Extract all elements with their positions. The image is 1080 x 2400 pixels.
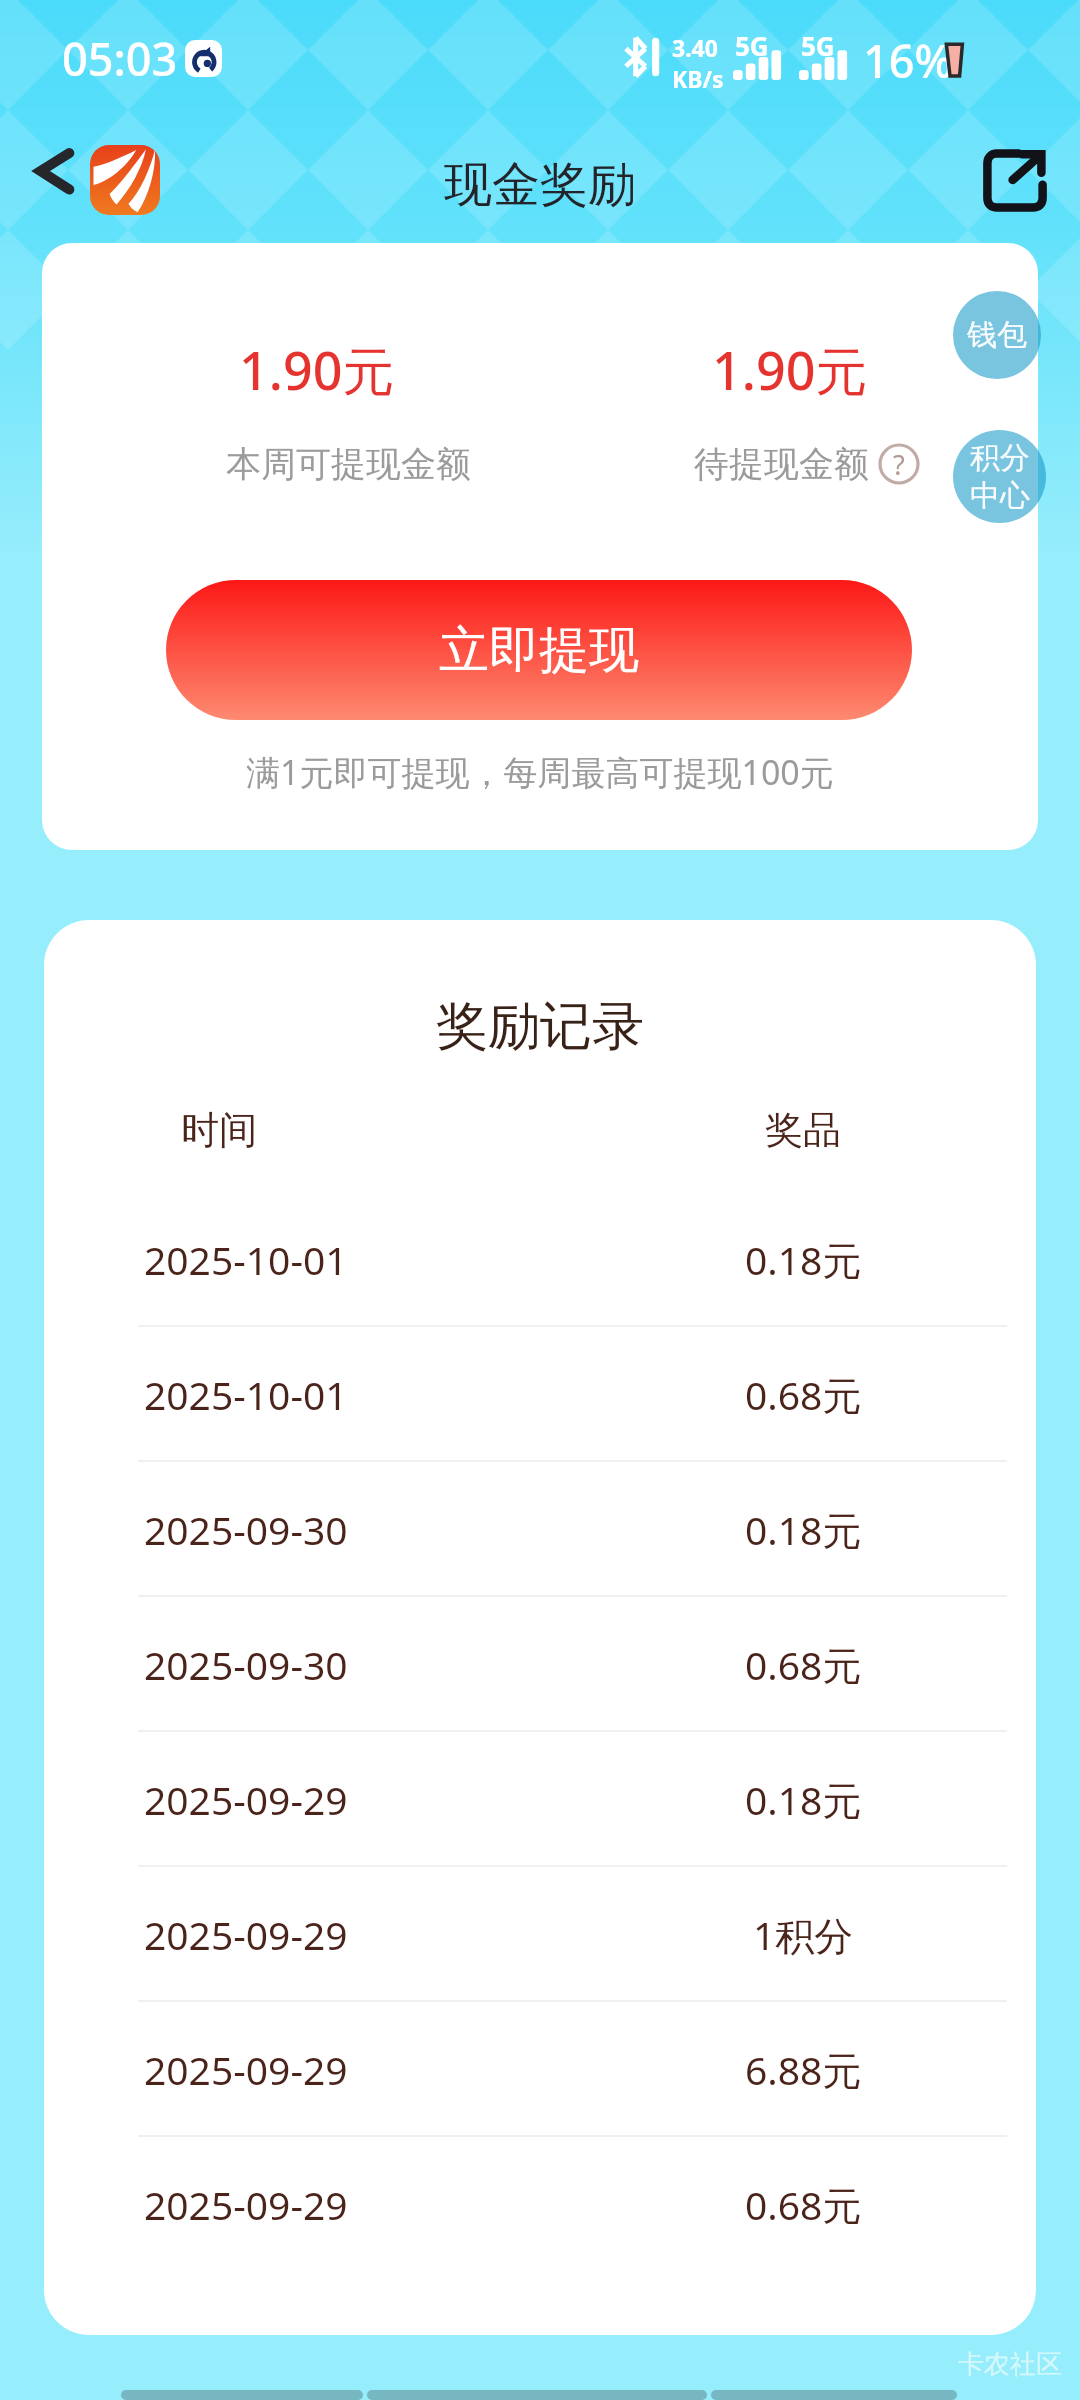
staticText: 卡农社区 [958, 2348, 1062, 2381]
staticText: 1.90元 [239, 334, 395, 405]
staticText: 时间 [181, 1106, 257, 1154]
staticText: 中心 [970, 477, 1030, 515]
staticText: KB/s [672, 63, 724, 94]
button[interactable]: 立即提现 [166, 580, 912, 720]
staticText: 6.88元 [745, 2043, 862, 2096]
staticText: 0.18元 [745, 1773, 862, 1826]
staticText: 2025-09-30 [144, 1503, 348, 1556]
staticText: 0.68元 [745, 1368, 862, 1421]
staticText: 2025-10-01 [144, 1233, 348, 1286]
staticText: 0.68元 [745, 1638, 862, 1691]
staticText: 2025-09-29 [144, 2043, 348, 2096]
button[interactable]: 2025-10-01 [44, 1192, 1036, 1327]
staticText: 待提现金额 [694, 442, 869, 486]
staticText: 积分 [970, 439, 1030, 477]
staticText: 3.40 [672, 32, 718, 63]
button[interactable]: 钱包 [953, 291, 1041, 379]
button[interactable]: Navigation [367, 2390, 707, 2400]
button[interactable]: App logo [90, 145, 160, 215]
staticText: 2025-09-30 [144, 1638, 348, 1691]
staticText: 本周可提现金额 [226, 442, 471, 486]
button[interactable]: 2025-09-29 [44, 1867, 1036, 2002]
staticText: 1积分 [753, 1908, 854, 1961]
button[interactable]: 2025-09-30 [44, 1462, 1036, 1597]
button[interactable]: 2025-09-29 [44, 2002, 1036, 2137]
staticText: 0.68元 [745, 2178, 862, 2231]
staticText: 2025-09-29 [144, 1908, 348, 1961]
staticText: 满1元即可提现，每周最高可提现100元 [246, 749, 834, 795]
staticText: 0.18元 [745, 1233, 862, 1286]
button[interactable]: Share [985, 150, 1045, 210]
staticText: 0.18元 [745, 1503, 862, 1556]
staticText: 5G [735, 28, 769, 63]
staticText: 16% [863, 30, 953, 91]
staticText: 2025-09-29 [144, 2178, 348, 2231]
staticText: 5G [801, 28, 835, 63]
button[interactable]: 积分 [953, 430, 1046, 523]
staticText: 立即提现 [439, 619, 639, 682]
button[interactable]: Back [22, 139, 86, 203]
button[interactable]: Help [878, 443, 920, 485]
staticText: 2025-10-01 [144, 1368, 348, 1421]
staticText: 奖励记录 [436, 994, 644, 1060]
staticText: 奖品 [765, 1106, 841, 1154]
staticText: 现金奖励 [444, 155, 636, 215]
staticText: 钱包 [967, 316, 1027, 354]
button[interactable]: 2025-09-30 [44, 1597, 1036, 1732]
staticText: 05:03 [62, 28, 178, 89]
button[interactable]: Navigation [711, 2390, 957, 2400]
staticText: 1.90元 [712, 334, 868, 405]
button[interactable]: 2025-09-29 [44, 1732, 1036, 1867]
staticText: 2025-09-29 [144, 1773, 348, 1826]
button[interactable]: 2025-10-01 [44, 1327, 1036, 1462]
button[interactable]: Navigation [121, 2390, 363, 2400]
staticText: ? [893, 446, 905, 483]
button[interactable]: 2025-09-29 [44, 2137, 1036, 2272]
